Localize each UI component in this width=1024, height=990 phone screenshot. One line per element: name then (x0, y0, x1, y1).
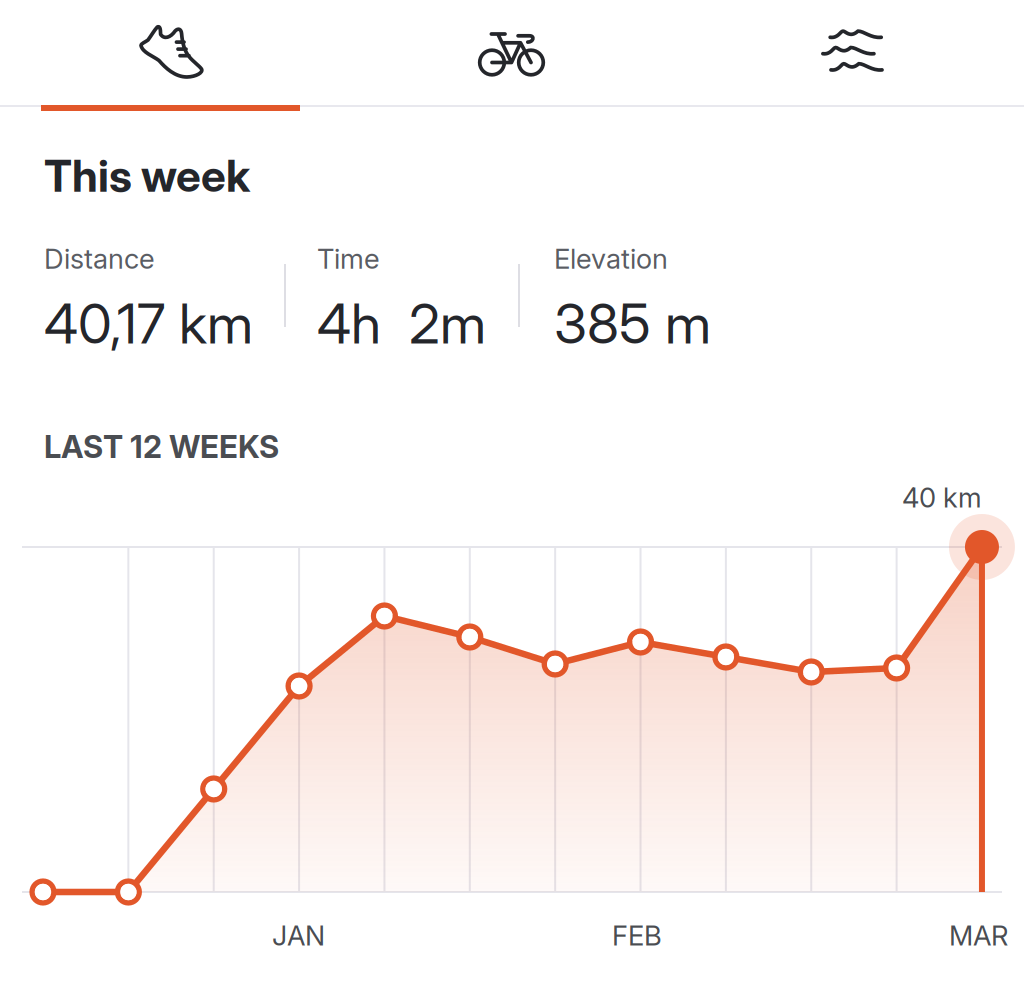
staticText: 40,17 km (44, 290, 253, 357)
staticText: Distance (44, 242, 155, 275)
staticText: 385 m (554, 290, 711, 357)
staticText: MAR (949, 919, 1008, 952)
staticText: Time (317, 242, 380, 275)
staticText: 40 km (902, 481, 982, 514)
staticText: Elevation (554, 242, 668, 275)
staticText: JAN (272, 919, 325, 952)
staticText: LAST 12 WEEKS (44, 428, 279, 465)
button[interactable]: Swimming (682, 0, 1023, 105)
button[interactable]: Running (0, 0, 341, 105)
staticText: This week (44, 149, 250, 202)
staticText: FEB (612, 919, 662, 952)
button[interactable]: Cycling (341, 0, 682, 105)
staticText: 4h 2m (317, 290, 486, 357)
